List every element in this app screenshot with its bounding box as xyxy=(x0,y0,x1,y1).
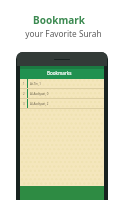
staticText: your Favorite Surah xyxy=(25,28,102,39)
button[interactable]: 3 xyxy=(20,99,104,109)
staticText: 3 xyxy=(23,102,25,106)
button[interactable]: 1 xyxy=(20,79,104,89)
staticText: 2 xyxy=(23,92,25,96)
button[interactable]: 2 xyxy=(20,89,104,99)
staticText: Al-Aadiyaat, 0 xyxy=(30,92,49,96)
button[interactable]: Bookmarks xyxy=(20,69,104,79)
staticText: Bookmark xyxy=(33,13,85,27)
staticText: Al-Aadiyaat, 2 xyxy=(30,102,49,106)
staticText: At-Tin, 1 xyxy=(30,82,42,86)
staticText: Bookmarks xyxy=(47,70,72,76)
staticText: 1 xyxy=(23,82,25,86)
